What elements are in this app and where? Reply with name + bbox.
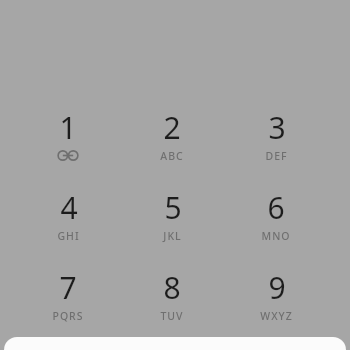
- staticText: PQRS: [52, 309, 84, 323]
- button[interactable]: 1 voicemail: [56, 107, 80, 161]
- staticText: 5: [164, 187, 182, 228]
- button[interactable]: 5 JKL: [163, 187, 182, 243]
- button[interactable]: 2 ABC: [160, 107, 184, 163]
- button[interactable]: 7 PQRS: [52, 267, 84, 323]
- staticText: ABC: [160, 149, 184, 163]
- staticText: MNO: [261, 229, 291, 243]
- staticText: 7: [59, 267, 77, 308]
- button[interactable]: 3 DEF: [265, 107, 288, 163]
- button[interactable]: 8 TUV: [160, 267, 184, 323]
- staticText: WXYZ: [260, 309, 293, 323]
- staticText: 8: [163, 267, 181, 308]
- staticText: 6: [267, 187, 285, 228]
- staticText: GHI: [57, 229, 80, 243]
- staticText: 3: [268, 107, 286, 148]
- staticText: TUV: [160, 309, 184, 323]
- staticText: 2: [163, 107, 181, 148]
- staticText: 9: [268, 267, 286, 308]
- staticText: 4: [60, 187, 78, 228]
- staticText: JKL: [163, 229, 182, 243]
- button[interactable]: 6 MNO: [261, 187, 291, 243]
- button[interactable]: 4 GHI: [57, 187, 80, 243]
- button[interactable]: Dial actions: [4, 337, 346, 350]
- staticText: DEF: [265, 149, 288, 163]
- staticText: 1: [59, 107, 77, 148]
- button[interactable]: 9 WXYZ: [260, 267, 293, 323]
